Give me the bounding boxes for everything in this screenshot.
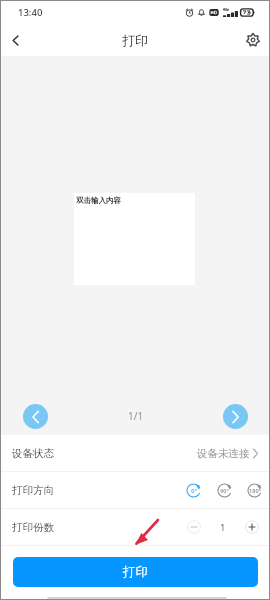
button[interactable]: 打印份数 [0,509,270,545]
staticText: 双击输入内容 [76,196,121,205]
staticText: 1/1 [128,409,144,423]
staticText: 打印方向 [12,484,54,497]
staticText: 1 [220,521,226,534]
button[interactable]: Decrease copies [187,520,201,534]
staticText: 设备未连接 [197,447,250,460]
button[interactable]: Previous page [23,404,48,429]
staticText: 设备状态 [12,447,54,460]
button[interactable]: 打印 [13,557,258,587]
button[interactable]: Next page [223,404,248,429]
button[interactable]: Settings [236,24,270,56]
staticText: 0° [191,487,197,494]
staticText: 13:40 [18,6,43,19]
button[interactable]: Back [0,25,30,55]
button[interactable]: Increase copies [245,520,259,534]
button[interactable]: Rotate 90° [217,483,232,498]
button[interactable]: Rotate 0° [186,483,201,498]
staticText: 180° [249,487,261,494]
staticText: 打印 [123,564,148,580]
button[interactable]: Rotate 180° [247,483,262,498]
staticText: 90° [220,487,229,494]
button[interactable]: 打印方向 [0,472,270,508]
button[interactable]: 设备状态 [0,435,270,471]
staticText: 打印份数 [12,521,54,534]
staticText: 打印 [122,32,148,48]
